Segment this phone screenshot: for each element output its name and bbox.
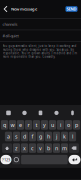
button[interactable]: t bbox=[33, 120, 40, 130]
staticText: s bbox=[15, 133, 18, 140]
button[interactable]: g bbox=[37, 132, 44, 141]
staticText: h bbox=[47, 133, 50, 140]
button[interactable]: w bbox=[9, 120, 16, 130]
staticText: n bbox=[55, 145, 58, 152]
staticText: m bbox=[62, 145, 67, 152]
button[interactable]: h bbox=[45, 132, 52, 141]
staticText: k bbox=[63, 133, 66, 140]
staticText: a bbox=[7, 133, 10, 140]
button[interactable]: Voice input bbox=[64, 106, 80, 120]
staticText: e bbox=[19, 121, 22, 128]
staticText: j bbox=[56, 133, 57, 140]
button[interactable]: Settings bbox=[48, 106, 64, 120]
staticText: x bbox=[23, 145, 26, 152]
button[interactable]: a bbox=[5, 132, 12, 141]
staticText: c bbox=[31, 145, 34, 152]
staticText: q bbox=[3, 121, 6, 128]
button[interactable]: m bbox=[61, 143, 68, 153]
button[interactable]: k bbox=[61, 132, 68, 141]
button[interactable]: Delete bbox=[69, 143, 79, 153]
button[interactable]: Back bbox=[0, 0, 11, 18]
button[interactable]: f bbox=[29, 132, 36, 141]
staticText: i bbox=[60, 121, 61, 128]
button[interactable]: Return bbox=[68, 155, 80, 164]
staticText: New message bbox=[11, 6, 37, 12]
button[interactable]: p bbox=[73, 120, 80, 130]
button[interactable]: b bbox=[45, 143, 52, 153]
staticText: b bbox=[47, 145, 50, 152]
staticText: ?123 bbox=[2, 157, 10, 162]
button[interactable]: r bbox=[25, 120, 32, 130]
staticText: w bbox=[10, 121, 14, 128]
button[interactable]: n bbox=[53, 143, 60, 153]
staticText: channels bbox=[2, 21, 17, 27]
button[interactable]: o bbox=[65, 120, 72, 130]
staticText: o bbox=[67, 121, 70, 128]
staticText: t bbox=[35, 121, 37, 128]
button[interactable]: Apps bbox=[0, 106, 16, 120]
staticText: r bbox=[27, 121, 29, 128]
button[interactable]: u bbox=[49, 120, 56, 130]
button[interactable]: q bbox=[1, 120, 8, 130]
button[interactable]: y bbox=[41, 120, 48, 130]
button[interactable]: s bbox=[13, 132, 20, 141]
button[interactable]: #all-quiet bbox=[0, 30, 81, 41]
button[interactable]: x bbox=[21, 143, 28, 153]
staticText: p bbox=[75, 121, 78, 128]
button[interactable]: Stickers bbox=[16, 106, 32, 120]
staticText: f bbox=[31, 133, 33, 140]
button[interactable]: z bbox=[13, 143, 20, 153]
button[interactable]: v bbox=[37, 143, 44, 153]
button[interactable]: Clipboard bbox=[32, 106, 48, 120]
button[interactable]: l bbox=[69, 132, 76, 141]
button[interactable]: d bbox=[21, 132, 28, 141]
staticText: v bbox=[39, 145, 42, 152]
staticText: y bbox=[43, 121, 46, 128]
button[interactable]: c bbox=[29, 143, 36, 153]
staticText: SEND bbox=[66, 6, 76, 12]
button[interactable]: i bbox=[57, 120, 64, 130]
staticText: You guys aim radio silent, just to keep … bbox=[2, 44, 76, 58]
button[interactable]: ?123 bbox=[0, 155, 11, 164]
staticText: #all-quiet bbox=[2, 33, 18, 38]
staticText: z bbox=[15, 145, 18, 152]
staticText: l bbox=[72, 133, 73, 140]
staticText: d bbox=[23, 133, 26, 140]
button[interactable]: Switch keyboard bbox=[12, 155, 20, 164]
button[interactable]: Shift bbox=[2, 143, 12, 153]
button[interactable]: channels bbox=[0, 19, 81, 30]
staticText: u bbox=[51, 121, 54, 128]
button[interactable]: j bbox=[53, 132, 60, 141]
button[interactable]: SEND bbox=[65, 6, 77, 12]
button[interactable]: e bbox=[17, 120, 24, 130]
staticText: g bbox=[39, 133, 42, 140]
